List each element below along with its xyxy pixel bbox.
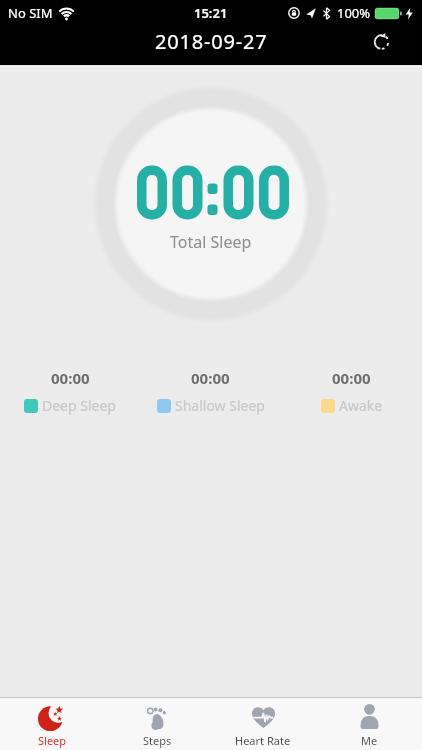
staticText: No SIM xyxy=(8,4,53,22)
staticText: Total Sleep xyxy=(170,231,252,253)
staticText: 2018-09-27 xyxy=(155,28,268,55)
button[interactable]: Me xyxy=(316,698,422,750)
staticText: 00:00 xyxy=(51,368,90,388)
button[interactable] xyxy=(370,30,392,52)
button[interactable]: Steps xyxy=(105,698,210,750)
button[interactable]: Heart Rate xyxy=(210,698,316,750)
staticText: Steps xyxy=(143,733,172,748)
staticText: 15:21 xyxy=(194,4,228,22)
staticText: 00:00 xyxy=(332,368,371,388)
staticText: Me xyxy=(361,733,378,748)
staticText: Shallow Sleep xyxy=(175,396,265,415)
staticText: Heart Rate xyxy=(235,733,291,748)
staticText: Awake xyxy=(339,396,383,415)
button[interactable]: Sleep xyxy=(0,698,105,750)
staticText: 100% xyxy=(337,4,371,22)
staticText: Deep Sleep xyxy=(42,396,116,415)
staticText: Sleep xyxy=(38,733,67,748)
staticText: 00:00 xyxy=(191,368,230,388)
